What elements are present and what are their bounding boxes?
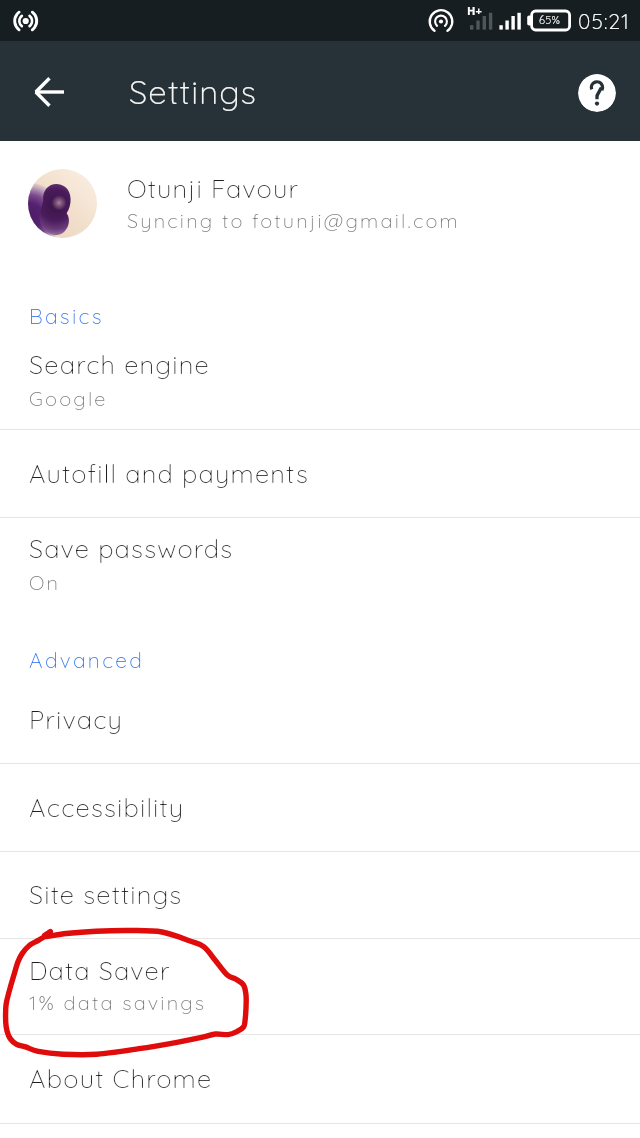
button[interactable] — [0, 690, 640, 763]
staticText: About Chrome — [29, 1062, 213, 1094]
staticText: On — [29, 570, 61, 595]
staticText: Google — [29, 386, 108, 411]
staticText: Basics — [29, 303, 104, 329]
staticText: Accessibility — [29, 791, 185, 823]
button[interactable]: Back — [21, 64, 77, 120]
button[interactable] — [0, 939, 640, 1034]
staticText: H+ — [467, 3, 482, 18]
staticText: Autofill and payments — [29, 457, 309, 489]
button[interactable] — [0, 430, 640, 517]
staticText: Privacy — [29, 703, 124, 735]
staticText: Data Saver — [29, 954, 171, 986]
button[interactable] — [0, 764, 640, 851]
staticText: Otunji Favour — [127, 172, 300, 204]
staticText: 65% — [539, 13, 561, 27]
button[interactable] — [0, 1035, 640, 1123]
staticText: Search engine — [29, 348, 210, 380]
staticText: Advanced — [29, 647, 145, 673]
button[interactable] — [0, 518, 640, 606]
staticText: 05:21 — [578, 8, 631, 34]
button[interactable] — [0, 141, 640, 262]
button[interactable]: Help — [578, 74, 616, 112]
staticText: Syncing to fotunji@gmail.com — [127, 208, 460, 233]
staticText: Settings — [129, 71, 258, 112]
button[interactable] — [0, 340, 640, 429]
staticText: 1% data savings — [29, 990, 207, 1015]
staticText: Site settings — [29, 878, 183, 910]
staticText: Save passwords — [29, 532, 234, 564]
button[interactable] — [0, 852, 640, 938]
